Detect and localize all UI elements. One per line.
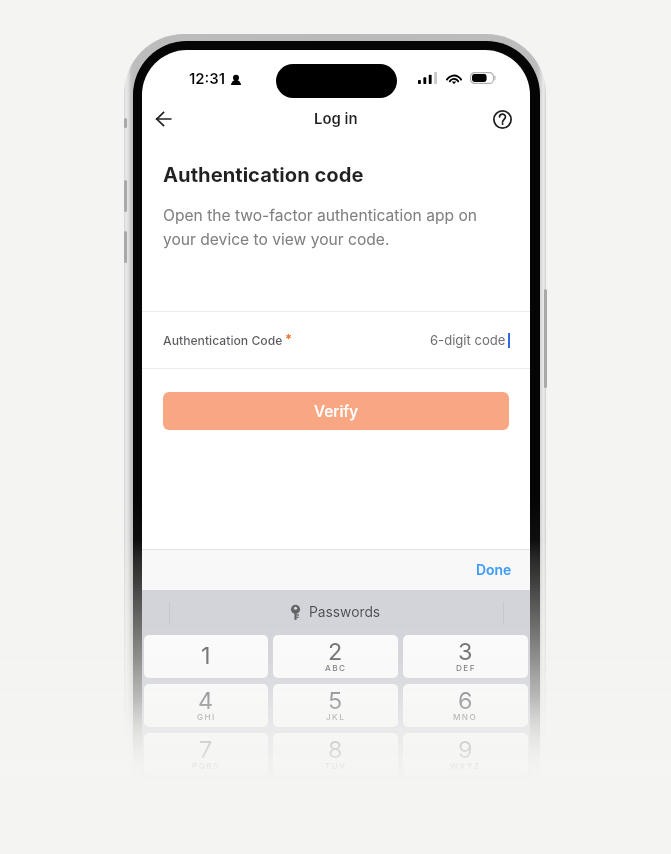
staticText: WXYZ <box>450 761 481 771</box>
button[interactable]: 4 <box>144 684 268 727</box>
button[interactable]: Back <box>143 99 183 139</box>
button[interactable]: Help <box>482 99 522 139</box>
staticText: Authentication Code <box>163 333 283 348</box>
staticText: 5 <box>328 686 343 714</box>
staticText: 7 <box>199 735 213 763</box>
staticText: 1 <box>201 641 211 669</box>
staticText: 4 <box>198 686 214 714</box>
button[interactable]: 1 <box>144 635 268 678</box>
button[interactable]: 6 <box>403 684 528 727</box>
staticText: 3 <box>458 637 473 665</box>
button[interactable]: 9 <box>403 733 528 776</box>
staticText: JKL <box>326 712 346 722</box>
staticText: GHI <box>197 712 216 722</box>
staticText: 2 <box>328 637 343 665</box>
staticText: TUV <box>325 761 347 771</box>
staticText: 8 <box>328 735 343 763</box>
button[interactable]: 2 <box>273 635 398 678</box>
staticText: ABC <box>325 663 347 673</box>
staticText: Passwords <box>309 604 381 621</box>
staticText: 6-digit code <box>430 332 506 348</box>
button[interactable]: Done <box>476 562 512 579</box>
staticText: Authentication code <box>163 162 364 186</box>
staticText: DEF <box>456 663 476 673</box>
staticText: 9 <box>458 735 473 763</box>
button[interactable]: 3 <box>403 635 528 678</box>
staticText: * <box>285 332 292 347</box>
staticText: PQRS <box>192 761 220 771</box>
staticText: Log in <box>314 110 358 128</box>
staticText: Verify <box>314 402 359 421</box>
staticText: 6 <box>458 686 473 714</box>
staticText: 12:31 <box>189 70 226 88</box>
staticText: Done <box>476 562 512 579</box>
staticText: Open the two-factor authentication app o… <box>163 206 503 249</box>
button[interactable]: 8 <box>273 733 398 776</box>
button[interactable]: 7 <box>144 733 268 776</box>
button[interactable]: Authentication Code <box>142 312 530 368</box>
button[interactable]: Verify <box>163 392 509 430</box>
staticText: MNO <box>453 712 478 722</box>
button[interactable]: 5 <box>273 684 398 727</box>
